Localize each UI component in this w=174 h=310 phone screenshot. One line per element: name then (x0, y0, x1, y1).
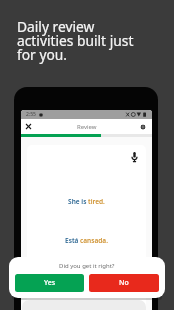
staticText: No (119, 278, 129, 288)
button[interactable]: Close (22, 120, 35, 133)
button[interactable]: Yes (15, 274, 84, 292)
button[interactable]: Settings (138, 122, 148, 132)
button[interactable]: No (89, 274, 159, 292)
staticText: Está cansada. (27, 236, 146, 245)
staticText: Did you get it right? (59, 262, 115, 270)
staticText: She is tired. (27, 197, 146, 206)
staticText: Yes (44, 278, 56, 288)
staticText: Daily review activities built just for y… (17, 17, 134, 64)
staticText: Review (77, 123, 97, 131)
button[interactable]: Microphone (129, 151, 140, 162)
staticText: 2:55 (26, 111, 36, 118)
